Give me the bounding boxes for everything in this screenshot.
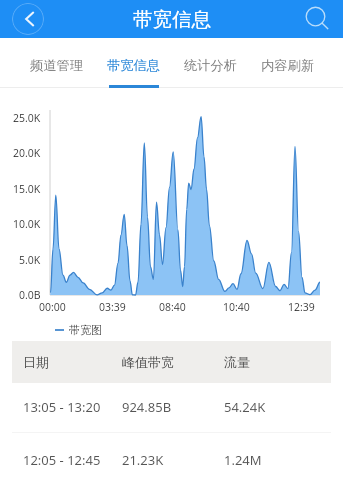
staticText: 12:05 - 12:45 xyxy=(23,451,101,469)
staticText: 08:40 xyxy=(159,300,186,314)
staticText: 20.0K xyxy=(13,146,41,160)
staticText: 1.24M xyxy=(224,451,262,469)
staticText: 10:40 xyxy=(223,300,250,314)
staticText: 21.23K xyxy=(122,451,164,469)
staticText: 峰值带宽 xyxy=(122,354,174,370)
staticText: 频道管理 xyxy=(30,57,83,74)
staticText: 统计分析 xyxy=(184,57,237,74)
staticText: 12:39 xyxy=(288,300,315,314)
staticText: 13:05 - 13:20 xyxy=(23,398,101,416)
staticText: 10.0K xyxy=(13,217,41,231)
staticText: 内容刷新 xyxy=(261,57,314,74)
staticText: 带宽图 xyxy=(69,323,102,337)
button[interactable] xyxy=(12,383,331,432)
button[interactable] xyxy=(12,433,331,477)
staticText: 日期 xyxy=(23,354,49,370)
staticText: 54.24K xyxy=(224,398,266,416)
staticText: 流量 xyxy=(224,354,250,370)
staticText: 25.0K xyxy=(13,111,41,125)
staticText: 03:39 xyxy=(99,300,126,314)
button[interactable]: 统计分析 xyxy=(172,38,249,88)
button[interactable]: Search xyxy=(300,3,332,35)
staticText: 带宽信息 xyxy=(107,57,160,74)
button[interactable]: 内容刷新 xyxy=(249,38,326,88)
staticText: 15.0K xyxy=(13,182,41,196)
staticText: 带宽信息 xyxy=(133,7,211,32)
staticText: 924.85B xyxy=(122,398,172,416)
button[interactable]: Back xyxy=(12,3,44,35)
staticText: 00:00 xyxy=(39,300,66,314)
staticText: 0.0B xyxy=(19,288,41,302)
staticText: 5.0K xyxy=(19,253,41,267)
button[interactable]: 频道管理 xyxy=(18,38,95,88)
button[interactable]: 带宽信息 xyxy=(95,38,172,88)
